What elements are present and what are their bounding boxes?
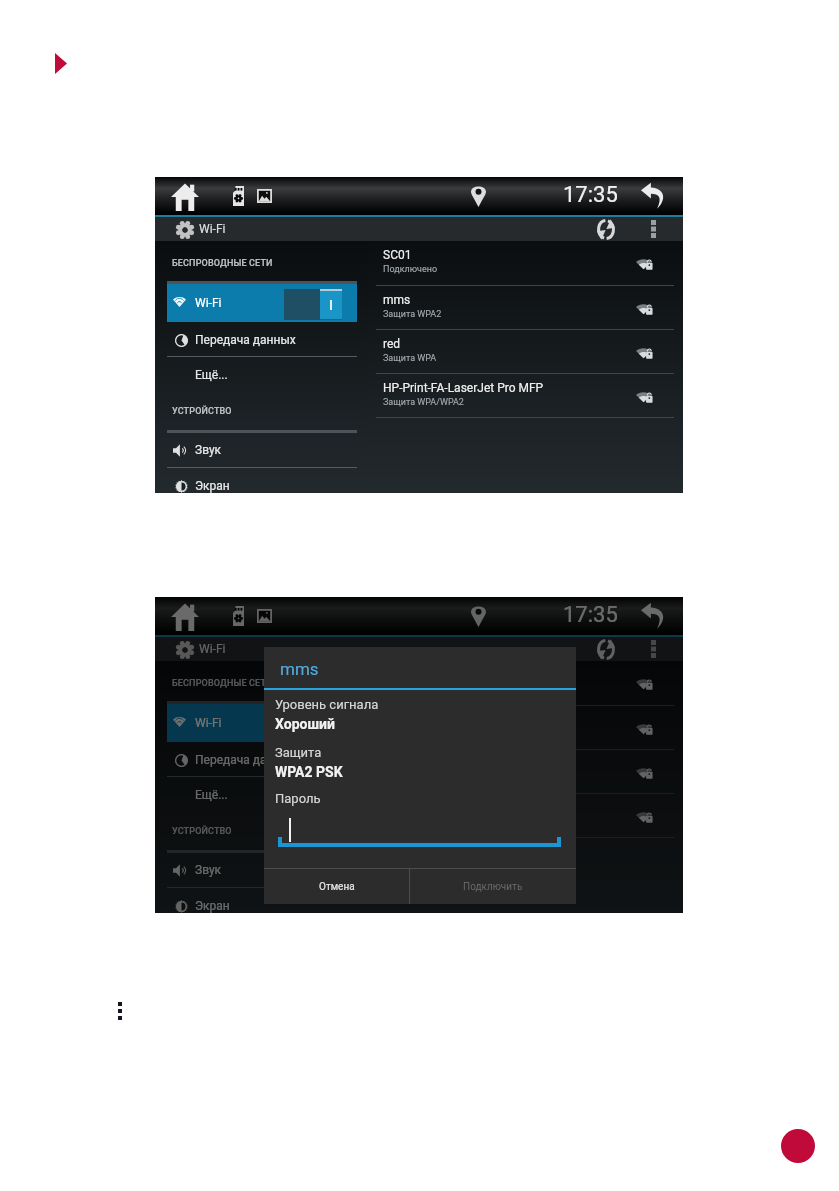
staticText: Отмена xyxy=(319,881,355,893)
button[interactable]: mms xyxy=(367,706,683,750)
button[interactable]: Wi-Fi xyxy=(169,637,239,661)
staticText: SC01 xyxy=(383,248,412,262)
button[interactable]: More options xyxy=(651,640,656,658)
button[interactable]: red xyxy=(367,750,683,794)
button[interactable]: HP-Print-FA-LaserJet Pro MFP xyxy=(367,794,683,838)
staticText: Wi-Fi xyxy=(199,222,226,236)
staticText: Подключено xyxy=(383,684,438,695)
button[interactable]: Экран xyxy=(167,889,357,923)
button[interactable]: Back xyxy=(641,181,667,210)
staticText: БЕСПРОВОДНЫЕ СЕТИ xyxy=(172,678,273,689)
staticText: Защита xyxy=(275,745,322,760)
staticText: Подключено xyxy=(383,264,438,275)
button[interactable]: mms xyxy=(367,286,683,330)
button[interactable]: red xyxy=(367,330,683,374)
staticText: 17:35 xyxy=(563,182,618,208)
button[interactable]: SC01 xyxy=(367,661,683,705)
staticText: Звук xyxy=(195,863,222,877)
staticText: Защита WPA xyxy=(383,353,437,364)
staticText: БЕСПРОВОДНЫЕ СЕТИ xyxy=(172,258,273,269)
staticText: Ещё... xyxy=(195,788,228,802)
staticText: Пароль xyxy=(275,791,321,806)
staticText: Передача данных xyxy=(195,753,296,767)
button[interactable]: Отмена xyxy=(264,869,409,904)
staticText: red xyxy=(383,337,401,351)
button[interactable]: Wi-Fi on/off xyxy=(284,709,342,740)
staticText: Wi-Fi xyxy=(195,296,222,310)
staticText: УСТРОЙСТВО xyxy=(172,406,232,417)
staticText: Ещё... xyxy=(195,368,228,382)
button[interactable]: Gallery xyxy=(257,189,272,203)
button[interactable]: More options xyxy=(651,220,656,238)
button[interactable]: Storage settings xyxy=(233,186,244,206)
staticText: Звук xyxy=(195,443,222,457)
staticText: Уровень сигнала xyxy=(275,697,379,712)
staticText: Защита WPA/WPA2 xyxy=(383,397,464,408)
staticText: Экран xyxy=(195,899,230,913)
staticText: 17:35 xyxy=(563,602,618,628)
button[interactable]: Refresh xyxy=(597,219,615,240)
button[interactable]: Gallery xyxy=(257,609,272,623)
staticText: Wi-Fi xyxy=(199,642,226,656)
staticText: УСТРОЙСТВО xyxy=(172,826,232,837)
button[interactable]: Wi-Fi on/off xyxy=(284,289,342,320)
staticText: HP-Print-FA-LaserJet Pro MFP xyxy=(383,381,544,395)
staticText: Подключить xyxy=(463,881,523,893)
button[interactable]: Передача данных xyxy=(167,323,357,357)
staticText: Wi-Fi xyxy=(195,716,222,730)
button[interactable]: Ещё... xyxy=(167,778,357,812)
button[interactable]: HP-Print-FA-LaserJet Pro MFP xyxy=(367,374,683,418)
button[interactable]: Звук xyxy=(167,853,357,887)
staticText: mms xyxy=(383,293,411,307)
button[interactable]: SC01 xyxy=(367,241,683,285)
staticText: mms xyxy=(280,659,319,679)
button[interactable]: Wi-Fi xyxy=(167,284,357,322)
staticText: Хороший xyxy=(275,716,335,732)
staticText: Экран xyxy=(195,479,230,493)
button[interactable]: Home xyxy=(171,603,199,631)
button[interactable]: Подключить xyxy=(410,869,576,904)
button[interactable]: Refresh xyxy=(597,639,615,660)
button[interactable]: Location xyxy=(471,604,486,627)
button[interactable]: Wi-Fi xyxy=(167,704,357,742)
button[interactable]: Ещё... xyxy=(167,358,357,392)
button[interactable]: Back xyxy=(641,601,667,630)
button[interactable]: Home xyxy=(171,183,199,211)
staticText: WPA2 PSK xyxy=(275,764,343,780)
staticText: Защита WPA2 xyxy=(383,309,442,320)
button[interactable]: Передача данных xyxy=(167,743,357,777)
button[interactable]: Экран xyxy=(167,469,357,503)
button[interactable]: Звук xyxy=(167,433,357,467)
button[interactable]: Location xyxy=(471,184,486,207)
button[interactable]: Wi-Fi xyxy=(169,217,239,241)
staticText: Передача данных xyxy=(195,333,296,347)
button[interactable]: Storage settings xyxy=(233,606,244,626)
